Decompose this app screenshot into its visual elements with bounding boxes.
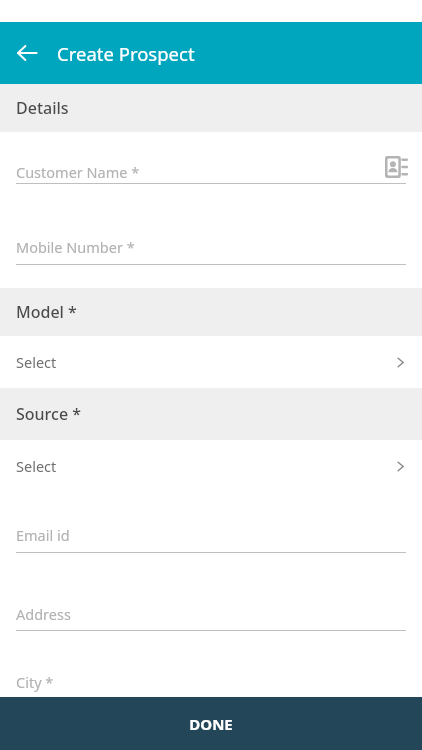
staticText: Select [16,456,57,476]
staticText: Address [16,604,71,624]
button[interactable]: Address [0,570,422,644]
button[interactable]: Select [0,440,422,492]
button[interactable]: DONE [0,697,422,750]
staticText: Create Prospect [57,41,195,66]
staticText: City * [16,672,54,692]
button[interactable]: City * [0,644,422,697]
staticText: Email id [16,525,70,545]
button[interactable]: Back [9,35,45,71]
staticText: Source * [16,403,82,425]
staticText: Customer Name * [16,162,140,182]
staticText: Model * [16,301,77,323]
staticText: Details [16,97,69,119]
staticText: Select [16,352,57,372]
button[interactable]: Select [0,336,422,388]
button[interactable]: Customer Name * [0,132,422,206]
staticText: DONE [189,714,233,734]
button[interactable]: Mobile Number * [0,206,422,288]
button[interactable]: Choose from contacts [382,153,410,181]
staticText: Mobile Number * [16,237,135,257]
button[interactable]: Email id [0,492,422,570]
